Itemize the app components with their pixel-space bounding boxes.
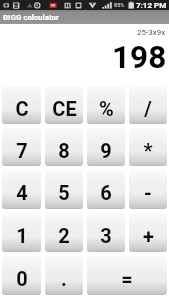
staticText: 1: [16, 224, 28, 247]
button[interactable]: 5: [45, 170, 83, 209]
button[interactable]: +: [129, 213, 167, 252]
button[interactable]: 3: [87, 213, 125, 252]
button[interactable]: .: [45, 256, 83, 295]
button[interactable]: 9: [87, 128, 125, 166]
staticText: 85%: [114, 2, 125, 8]
staticText: C: [15, 97, 29, 120]
staticText: /: [144, 97, 152, 120]
staticText: .: [61, 267, 67, 290]
staticText: 8: [58, 139, 70, 162]
staticText: 198: [112, 39, 167, 73]
button[interactable]: 1: [2, 213, 41, 252]
button[interactable]: =: [87, 256, 167, 295]
staticText: 7: [16, 139, 28, 162]
staticText: 3: [100, 224, 112, 247]
staticText: %: [99, 97, 114, 120]
staticText: 5: [58, 181, 70, 204]
button[interactable]: 7: [2, 128, 41, 166]
staticText: 25-3x9x: [137, 28, 166, 37]
staticText: 4: [16, 181, 28, 204]
staticText: 6: [100, 181, 112, 204]
staticText: +: [143, 224, 154, 247]
staticText: BIGG calculator: [3, 13, 60, 22]
staticText: =: [121, 267, 133, 290]
staticText: -: [144, 181, 152, 204]
button[interactable]: *: [129, 128, 167, 166]
button[interactable]: %: [87, 86, 125, 124]
button[interactable]: -: [129, 170, 167, 209]
button[interactable]: 2: [45, 213, 83, 252]
button[interactable]: 4: [2, 170, 41, 209]
staticText: 9: [100, 139, 112, 162]
button[interactable]: 0: [2, 256, 41, 295]
staticText: *: [143, 139, 153, 162]
staticText: 0: [16, 267, 28, 290]
button[interactable]: 6: [87, 170, 125, 209]
button[interactable]: C: [2, 86, 41, 124]
button[interactable]: 8: [45, 128, 83, 166]
button[interactable]: CE: [45, 86, 83, 124]
staticText: CE: [52, 97, 77, 120]
staticText: 7:12 PM: [136, 1, 167, 10]
button[interactable]: /: [129, 86, 167, 124]
staticText: 2: [58, 224, 70, 247]
